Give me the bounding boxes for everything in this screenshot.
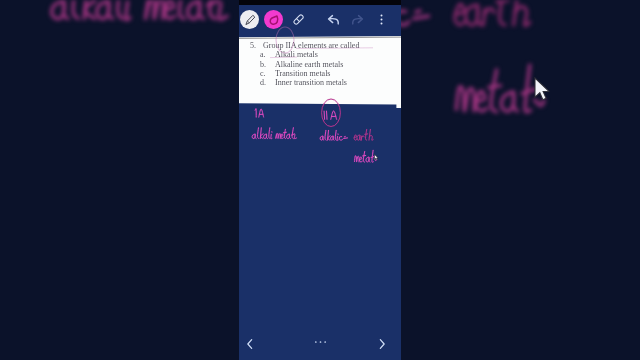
staticText: Alkaline earth metals [275,60,344,69]
button[interactable]: Undo [324,10,343,29]
button[interactable]: Pen tool [240,10,259,29]
button[interactable]: Previous page [240,334,260,354]
button[interactable]: Redo [348,10,367,29]
button[interactable]: More [306,332,334,352]
button[interactable]: Highlighter tool [264,10,283,29]
staticText: Alkali metals [275,50,318,59]
staticText: d. [260,78,266,87]
staticText: 5. [250,41,256,50]
staticText: Inner transition metals [275,78,347,87]
staticText: Transition metals [275,69,331,78]
staticText: Group IIA elements are called [263,41,360,50]
button[interactable]: Next page [372,334,392,354]
staticText: b. [260,60,266,69]
button[interactable]: More options [372,10,391,29]
staticText: a. [260,50,266,59]
button[interactable]: Eraser [289,10,308,29]
staticText: c. [260,69,266,78]
